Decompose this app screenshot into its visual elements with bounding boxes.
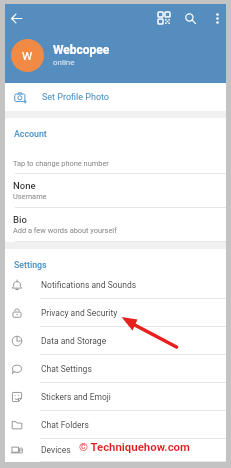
button[interactable]: Back	[0, 2, 33, 35]
staticText: Account	[14, 129, 47, 139]
staticText: Bio	[13, 214, 27, 225]
button[interactable]: Chat Settings	[5, 355, 226, 383]
staticText: Set Profile Photo	[42, 92, 110, 103]
button[interactable]: More options	[205, 6, 229, 30]
button[interactable]: Bio	[5, 208, 226, 242]
button[interactable]: Notifications and Sounds	[5, 271, 226, 299]
staticText: Webcopee	[53, 43, 110, 57]
button[interactable]: Search	[177, 5, 203, 31]
button[interactable]: Tap to change phone number	[5, 140, 226, 174]
staticText: Devices	[41, 445, 71, 455]
staticText: Username	[13, 192, 47, 201]
staticText: Settings	[14, 260, 47, 270]
button[interactable]: None	[5, 174, 226, 208]
staticText: Privacy and Security	[41, 308, 118, 318]
staticText: Notifications and Sounds	[41, 280, 137, 290]
button[interactable]: Devices	[5, 439, 226, 462]
button[interactable]: QR code	[151, 5, 177, 31]
staticText: Tap to change phone number	[13, 159, 109, 168]
button[interactable]: Set Profile Photo	[5, 83, 226, 111]
staticText: Add a few words about yourself	[13, 226, 117, 235]
button[interactable]: Privacy and Security	[5, 299, 226, 327]
staticText: Stickers and Emoji	[41, 392, 111, 402]
staticText: Chat Settings	[41, 364, 92, 374]
staticText: online	[53, 58, 75, 67]
staticText: Chat Folders	[41, 420, 89, 430]
staticText: Data and Storage	[41, 336, 107, 346]
staticText: W	[22, 49, 33, 62]
button[interactable]: Data and Storage	[5, 327, 226, 355]
button[interactable]: Stickers and Emoji	[5, 383, 226, 411]
staticText: © Techniquehow.com	[79, 440, 190, 453]
staticText: None	[13, 180, 36, 191]
button[interactable]: Chat Folders	[5, 411, 226, 439]
